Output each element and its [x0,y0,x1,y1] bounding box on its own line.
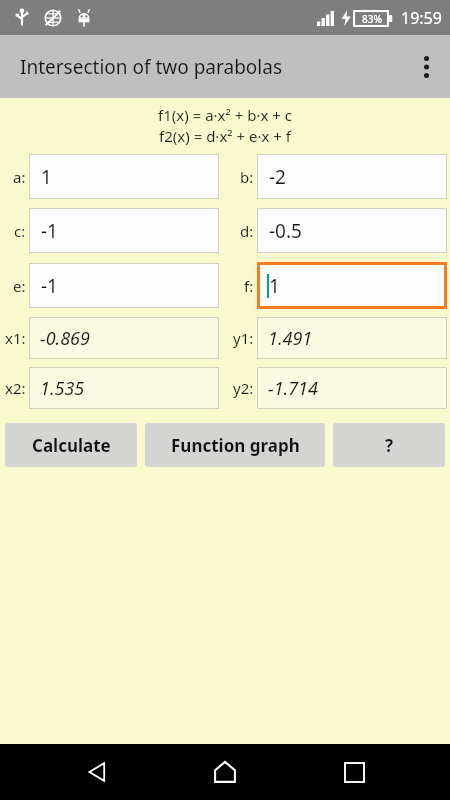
staticText: -2 [269,164,286,190]
button[interactable]: Function graph [145,423,325,467]
button[interactable]: 1 [29,154,219,199]
button[interactable]: Back [65,744,129,800]
staticText: c: [14,221,26,241]
staticText: a: [13,167,26,187]
staticText: Calculate [32,434,111,457]
button[interactable]: 1.535 [29,367,219,409]
staticText: d: [240,221,254,241]
button[interactable]: -2 [257,154,447,199]
button[interactable]: -1.714 [257,367,447,409]
button[interactable]: Home [193,744,257,800]
staticText: -1 [41,218,58,244]
staticText: -1 [41,273,58,299]
staticText: 83% [362,12,382,26]
staticText: 1.491 [268,326,313,351]
staticText: f2(x) = d·x² + e·x + f [0,126,450,146]
staticText: 19:59 [401,7,442,29]
button[interactable]: 1.491 [257,317,447,359]
staticText: 1 [41,164,52,190]
staticText: -1.714 [268,376,318,401]
staticText: 1 [269,273,280,299]
staticText: -0.5 [269,218,302,244]
button[interactable]: -0.869 [29,317,219,359]
staticText: x2: [5,378,26,398]
staticText: 1.535 [40,376,85,401]
button[interactable]: ? [333,423,445,467]
staticText: f: [244,276,254,296]
staticText: ? [385,434,394,457]
button[interactable]: Calculate [5,423,137,467]
staticText: y1: [233,328,254,348]
button[interactable]: 1 [257,262,447,309]
button[interactable]: -0.5 [257,208,447,253]
staticText: -0.869 [40,326,90,351]
button[interactable]: -1 [29,208,219,253]
staticText: b: [240,167,254,187]
button[interactable]: -1 [29,263,219,308]
staticText: Intersection of two parabolas [20,54,282,80]
staticText: f1(x) = a·x² + b·x + c [0,105,450,125]
button[interactable]: More options [402,35,450,98]
staticText: Function graph [171,434,300,457]
button[interactable]: Recent apps [322,744,386,800]
staticText: x1: [5,328,26,348]
staticText: y2: [233,378,254,398]
staticText: e: [13,276,26,296]
